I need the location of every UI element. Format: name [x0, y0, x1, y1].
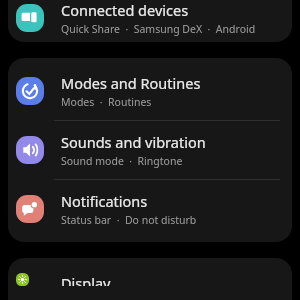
button[interactable]: Modes and Routines [8, 62, 292, 120]
button[interactable]: Connected devices [8, 0, 292, 36]
button[interactable]: Display [8, 262, 292, 300]
staticText: Quick Share · Samsung DeX · Android Auto [61, 22, 278, 36]
staticText: Sound mode · Ringtone [61, 154, 183, 168]
button[interactable]: Sounds and vibration [8, 121, 292, 179]
staticText: Notifications [61, 191, 148, 211]
staticText: Connected devices [61, 0, 189, 20]
staticText: Status bar · Do not disturb [61, 213, 197, 227]
staticText: Display [61, 273, 111, 286]
staticText: Modes and Routines [61, 73, 201, 93]
staticText: Sounds and vibration [61, 132, 206, 152]
staticText: Modes · Routines [61, 95, 152, 109]
button[interactable]: Notifications [8, 180, 292, 238]
